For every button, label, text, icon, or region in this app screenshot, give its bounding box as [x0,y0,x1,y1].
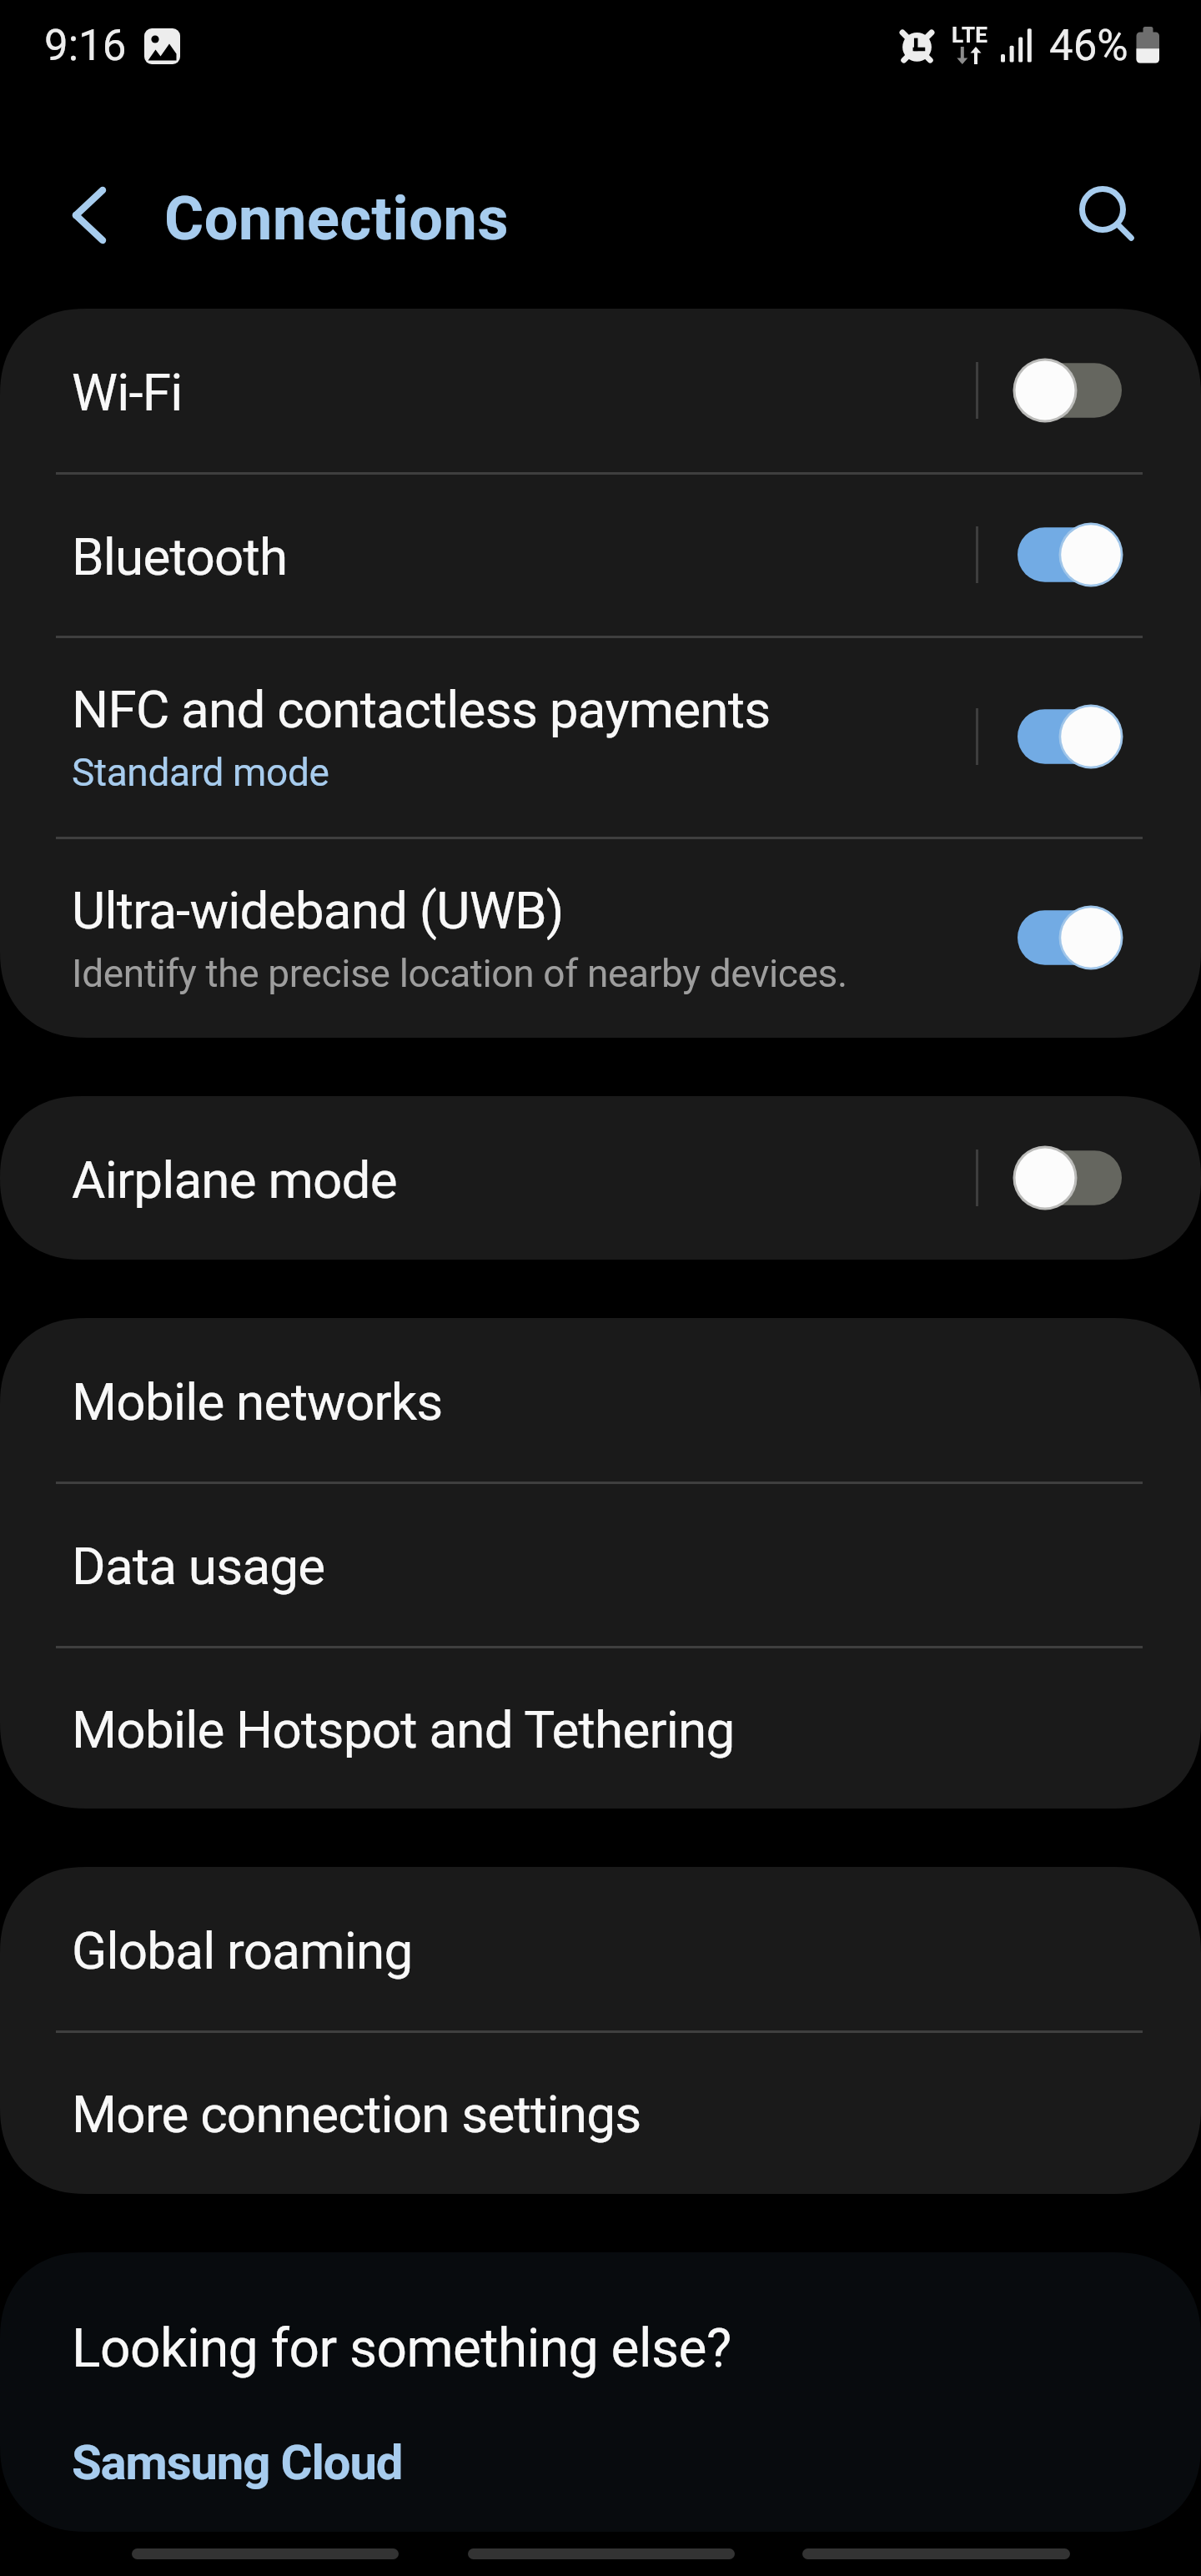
button[interactable]: Navigate up [38,165,138,265]
staticText: Data usage [72,1536,325,1597]
staticText: Global roaming [72,1920,413,1981]
staticText: Wi-Fi [72,362,183,423]
staticText: Identify the precise location of nearby … [72,951,847,996]
button[interactable]: Data usage [0,1482,1201,1647]
staticText: Airplane mode [72,1150,397,1210]
button[interactable]: On [1008,695,1134,778]
button[interactable]: Off [1008,349,1134,432]
staticText: 46% [1049,21,1128,71]
button[interactable]: Global roaming [0,1867,1201,2031]
button[interactable]: On [1008,513,1134,596]
button[interactable]: On [1008,896,1134,979]
staticText: 9:16 [44,21,127,71]
button[interactable]: Airplane mode [0,1096,1201,1260]
button[interactable]: Samsung Cloud [72,2434,403,2491]
staticText: Ultra-wideband (UWB) [72,880,564,941]
staticText: Connections [164,184,510,254]
button[interactable]: Off [1008,1136,1134,1220]
button[interactable]: Wi-Fi [0,309,1201,473]
staticText: Standard mode [72,750,329,795]
button[interactable]: Search [1053,159,1153,259]
staticText: Samsung Cloud [72,2434,403,2491]
staticText: Mobile networks [72,1371,443,1432]
staticText: Looking for something else? [72,2317,731,2380]
staticText: Mobile Hotspot and Tethering [72,1699,735,1760]
button[interactable]: Mobile Hotspot and Tethering [0,1647,1201,1809]
button[interactable]: NFC and contactless payments [0,636,1201,838]
staticText: More connection settings [72,2084,641,2145]
button[interactable]: Mobile networks [0,1318,1201,1482]
staticText: Bluetooth [72,526,288,587]
button[interactable]: More connection settings [0,2031,1201,2194]
staticText: LTE [952,23,988,48]
button[interactable]: Bluetooth [0,473,1201,636]
staticText: NFC and contactless payments [72,679,771,740]
button[interactable]: Ultra-wideband (UWB) [0,838,1201,1038]
